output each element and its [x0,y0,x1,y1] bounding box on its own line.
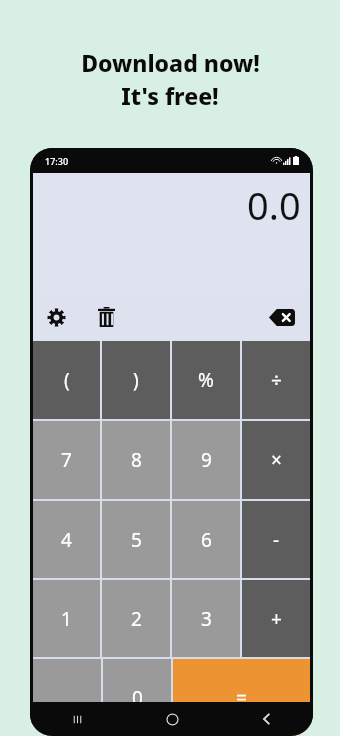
staticText: ) [133,367,139,393]
button[interactable]: . [33,659,101,736]
staticText: ÷ [271,367,282,393]
button[interactable]: 4 [33,501,100,578]
staticText: ( [64,367,70,393]
button[interactable]: Back [219,702,313,736]
staticText: 0 [132,685,143,711]
button[interactable]: 3 [172,580,240,657]
staticText: 8 [131,447,142,473]
staticText: - [273,527,280,553]
staticText: . [64,685,70,711]
button[interactable]: = [173,659,310,736]
staticText: 4 [61,527,72,553]
staticText: 2 [131,606,142,632]
staticText: = [236,685,247,711]
button[interactable]: ÷ [242,341,310,419]
button[interactable]: 6 [172,501,240,578]
button[interactable]: 2 [102,580,170,657]
button[interactable]: Settings [39,300,73,334]
staticText: × [271,447,282,473]
staticText: % [198,367,214,393]
staticText: 5 [131,527,142,553]
button[interactable]: Home [125,702,219,736]
button[interactable]: × [242,421,310,499]
button[interactable]: + [242,580,310,657]
staticText: It's free! [121,80,219,111]
staticText: 3 [201,606,212,632]
button[interactable]: Backspace [264,302,300,332]
button[interactable]: - [242,501,310,578]
button[interactable]: ) [102,341,170,419]
button[interactable]: 0 [103,659,171,736]
staticText: 1 [61,606,72,632]
staticText: 0.0 [247,179,301,231]
button[interactable]: 8 [102,421,170,499]
button[interactable]: 9 [172,421,240,499]
button[interactable]: 5 [102,501,170,578]
button[interactable]: Recents [30,702,125,736]
staticText: 9 [201,447,212,473]
staticText: 17:30 [45,155,69,167]
button[interactable]: ( [33,341,100,419]
button[interactable]: Clear history [89,300,123,334]
staticText: Download now! [81,47,260,78]
staticText: + [271,606,282,632]
button[interactable]: % [172,341,240,419]
button[interactable]: 7 [33,421,100,499]
staticText: 6 [201,527,212,553]
button[interactable]: 1 [33,580,100,657]
staticText: 7 [61,447,72,473]
